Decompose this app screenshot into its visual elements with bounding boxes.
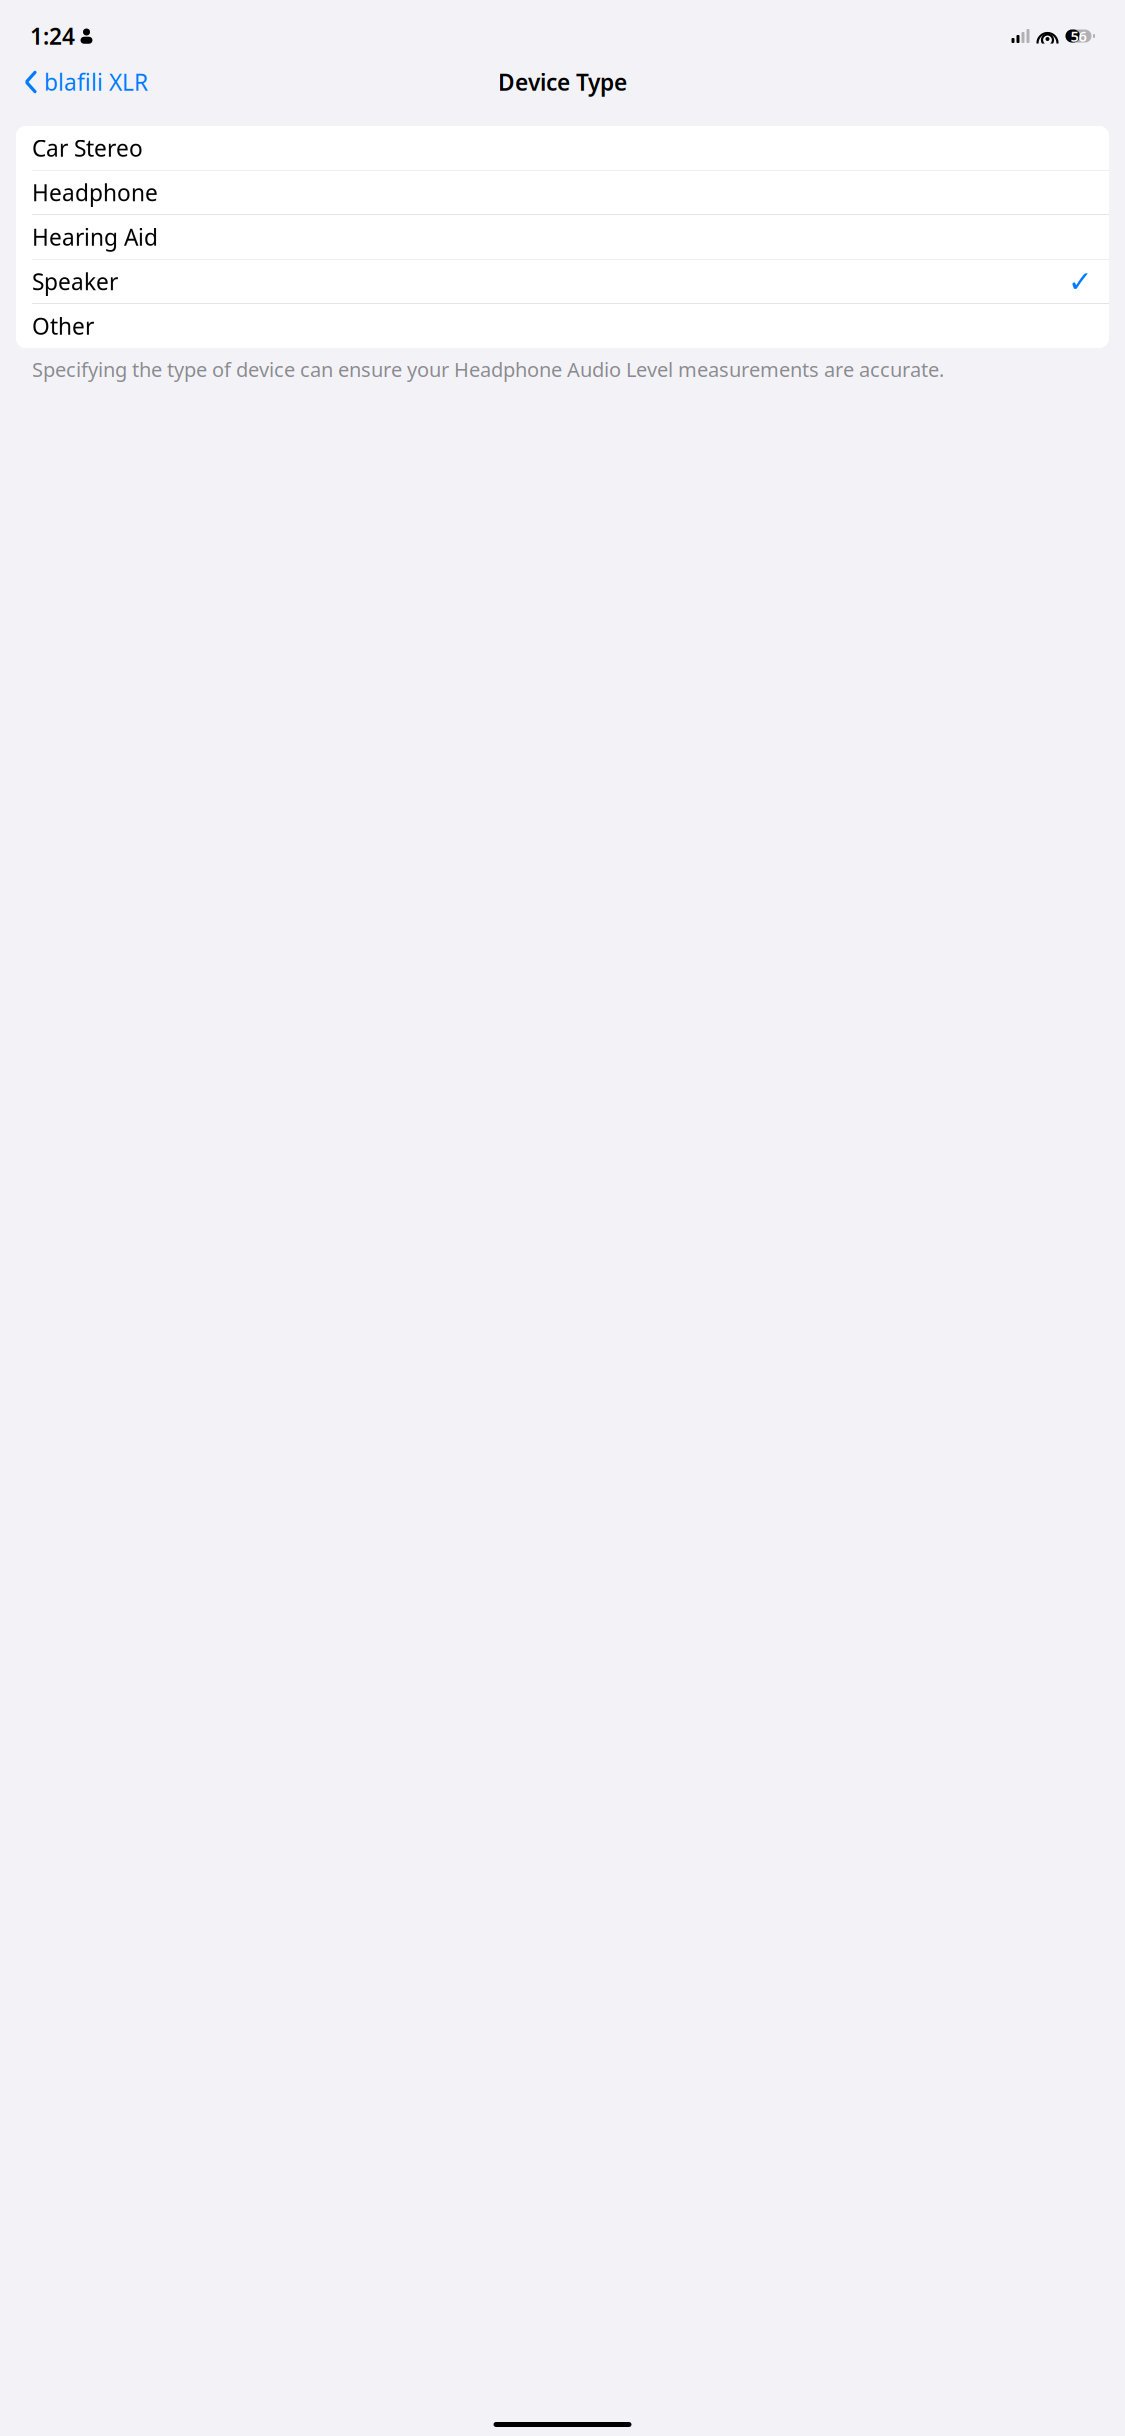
button[interactable]: Speaker (16, 259, 1109, 304)
button[interactable]: Car Stereo (16, 126, 1109, 170)
staticText: blafili XLR (44, 67, 148, 97)
staticText: 1:24 (30, 21, 75, 51)
button[interactable]: Hearing Aid (16, 215, 1109, 259)
staticText: Hearing Aid (32, 222, 158, 252)
button[interactable]: Headphone (16, 170, 1109, 215)
staticText: Car Stereo (32, 133, 143, 163)
button[interactable]: blafili XLR (16, 61, 156, 103)
staticText: ✓ (1068, 265, 1093, 298)
staticText: Headphone (32, 177, 158, 207)
staticText: Specifying the type of device can ensure… (32, 356, 944, 383)
staticText: Other (32, 311, 94, 341)
staticText: Device Type (498, 67, 627, 97)
staticText: 56 (1070, 26, 1086, 46)
staticText: Speaker (32, 266, 118, 296)
button[interactable]: Other (16, 304, 1109, 348)
